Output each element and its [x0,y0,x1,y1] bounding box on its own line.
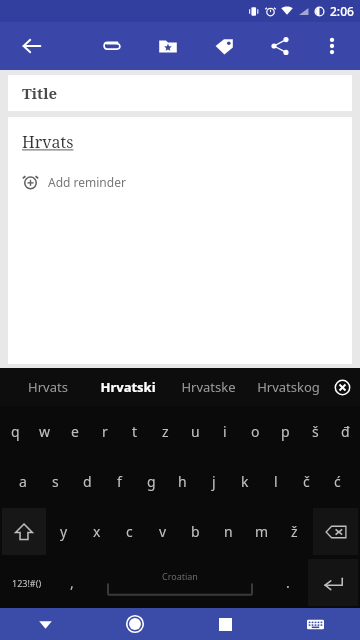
button[interactable]: c [114,507,145,556]
staticText: đ [341,422,350,441]
staticText: Title [22,83,58,103]
button[interactable]: 123!#() [0,557,54,608]
staticText: m [255,522,269,541]
staticText: Hrvats [28,378,68,396]
button[interactable]: , [55,558,89,607]
staticText: v [159,522,167,541]
button[interactable]: Notebook [148,26,188,66]
button[interactable]: t [121,407,149,455]
staticText: k [241,472,249,491]
button[interactable]: v [147,507,178,556]
staticText: Hrvatski [100,378,156,396]
button[interactable]: ć [323,457,352,505]
staticText: g [147,472,156,491]
staticText: w [39,422,51,441]
button[interactable]: More options [312,26,352,66]
button[interactable]: Hrvats [8,117,352,364]
button[interactable]: y [49,507,79,556]
staticText: 123!#() [12,577,42,589]
staticText: q [11,422,20,441]
staticText: Hrvatske [181,378,236,396]
button[interactable]: Switch keyboard [270,608,360,640]
button[interactable]: d [72,457,102,505]
staticText: f [117,472,122,491]
button[interactable]: Share [260,26,300,66]
staticText: Add reminder [48,174,126,190]
staticText: r [102,422,108,441]
button[interactable]: g [136,457,166,505]
staticText: , [70,573,74,592]
button[interactable]: b [180,507,211,556]
staticText: b [191,522,200,541]
button[interactable]: Home [90,608,180,640]
button[interactable]: Hrvatski [86,368,170,406]
staticText: s [52,472,59,491]
staticText: 2:06 [330,3,354,19]
button[interactable]: f [104,457,134,505]
button[interactable]: w [31,407,59,455]
button[interactable]: š [301,407,329,455]
button[interactable]: i [211,407,239,455]
button[interactable]: Hrvats [10,368,86,406]
button[interactable]: Title [8,75,352,111]
button[interactable]: Close suggestions [329,374,355,400]
button[interactable]: s [40,457,70,505]
button[interactable]: q [1,407,29,455]
button[interactable]: Back [12,26,52,66]
staticText: t [132,422,138,441]
button[interactable]: Croatian [90,557,270,608]
button[interactable]: Add reminder [22,173,126,190]
staticText: l [274,472,278,491]
button[interactable]: x [81,507,112,556]
staticText: . [286,573,290,592]
button[interactable]: Shift [2,508,46,555]
staticText: n [224,522,233,541]
button[interactable]: . [271,558,305,607]
staticText: z [162,422,169,441]
staticText: Hrvatskog [257,378,320,396]
button[interactable]: n [213,507,244,556]
staticText: j [212,472,216,491]
button[interactable]: Label [204,26,244,66]
button[interactable]: e [61,407,89,455]
staticText: Croatian [162,570,198,582]
button[interactable]: u [181,407,209,455]
button[interactable]: o [241,407,269,455]
staticText: x [93,522,101,541]
staticText: o [251,422,260,441]
button[interactable]: Recent apps [180,608,270,640]
button[interactable]: r [91,407,119,455]
button[interactable]: ž [279,507,310,556]
button[interactable]: l [261,457,290,505]
staticText: p [281,422,290,441]
staticText: ž [291,522,298,541]
staticText: e [71,422,79,441]
button[interactable]: z [151,407,179,455]
button[interactable]: Enter [308,559,358,606]
button[interactable]: a [8,457,38,505]
button[interactable]: j [199,457,228,505]
staticText: ć [334,472,341,491]
button[interactable]: Hide keyboard [0,608,90,640]
button[interactable]: m [246,507,277,556]
button[interactable]: k [230,457,259,505]
button[interactable]: Attach [92,26,132,66]
button[interactable]: p [271,407,299,455]
staticText: c [126,522,133,541]
staticText: y [60,522,68,541]
button[interactable]: h [168,457,197,505]
staticText: u [191,422,200,441]
staticText: Hrvats [22,131,74,153]
staticText: č [303,472,310,491]
button[interactable]: Hrvatskog [246,368,330,406]
staticText: d [83,472,92,491]
button[interactable]: Hrvatske [170,368,246,406]
staticText: i [223,422,227,441]
button[interactable]: đ [331,407,359,455]
button[interactable]: č [292,457,321,505]
staticText: a [19,472,27,491]
button[interactable]: Backspace [313,508,358,555]
staticText: h [178,472,187,491]
staticText: š [312,422,319,441]
